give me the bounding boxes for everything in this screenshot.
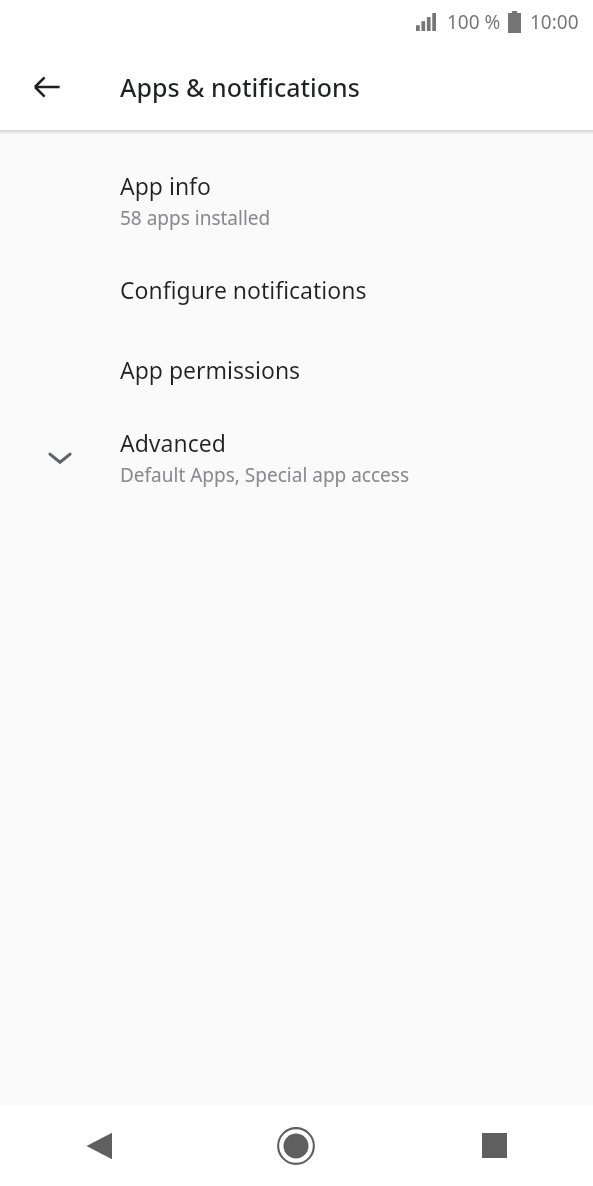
staticText: 58 apps installed [120,205,271,231]
button[interactable]: Recent apps [395,1105,593,1186]
button[interactable]: Back [18,58,76,116]
button[interactable]: Advanced [0,409,593,506]
staticText: App info [120,170,211,201]
staticText: Configure notifications [120,274,367,305]
button[interactable]: App info [0,152,593,249]
button[interactable]: Home [197,1105,395,1186]
staticText: 100 % [447,9,501,35]
staticText: App permissions [120,354,301,385]
button[interactable]: Back [0,1105,197,1186]
button[interactable]: Configure notifications [0,249,593,329]
staticText: 10:00 [530,9,579,35]
staticText: Default Apps, Special app access [120,462,410,488]
staticText: Advanced [120,427,226,458]
staticText: Apps & notifications [120,70,360,104]
button[interactable]: App permissions [0,329,593,409]
